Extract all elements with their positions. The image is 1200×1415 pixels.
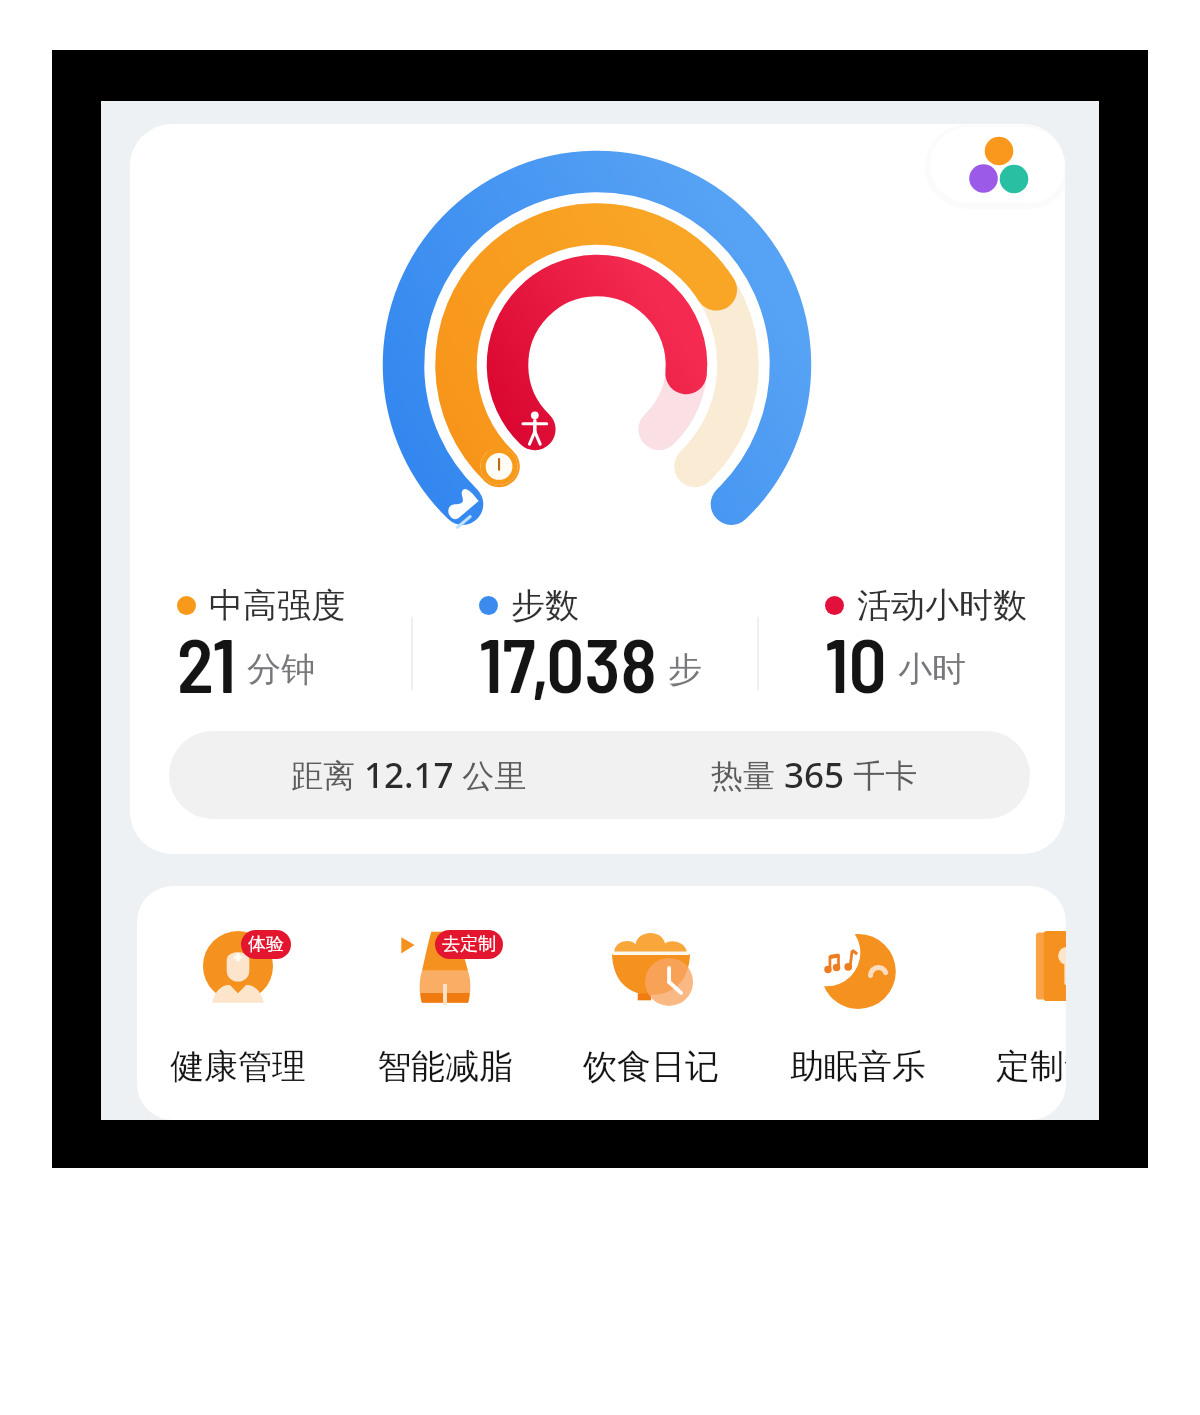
- staticText: 10: [825, 618, 887, 705]
- staticText: 智能减脂: [377, 1045, 513, 1088]
- button[interactable]: 定制食谱: [961, 886, 1066, 1120]
- staticText: 365: [784, 751, 845, 799]
- staticText: 助眠音乐: [790, 1045, 926, 1088]
- staticText: 距离: [291, 753, 364, 797]
- button[interactable]: 去定制: [342, 886, 548, 1120]
- button[interactable]: 距离: [169, 731, 1030, 819]
- staticText: 公里: [454, 753, 527, 797]
- staticText: 定制食谱: [996, 1045, 1066, 1088]
- staticText: 中高强度: [209, 584, 345, 627]
- staticText: 小时: [898, 648, 966, 691]
- staticText: 17,038: [479, 618, 657, 705]
- staticText: 分钟: [247, 648, 315, 691]
- button[interactable]: 体验: [137, 886, 341, 1120]
- button[interactable]: 步数: [479, 584, 757, 714]
- staticText: 活动小时数: [857, 584, 1027, 627]
- button[interactable]: 饮食日记: [548, 886, 754, 1120]
- button[interactable]: Apps: [130, 124, 1065, 854]
- staticText: 热量: [711, 753, 784, 797]
- staticText: 去定制: [442, 933, 496, 956]
- staticText: 饮食日记: [583, 1045, 719, 1088]
- button[interactable]: 中高强度: [177, 584, 411, 714]
- button[interactable]: Apps: [930, 127, 1065, 203]
- button[interactable]: 活动小时数: [825, 584, 1065, 714]
- staticText: 步数: [511, 584, 579, 627]
- staticText: 体验: [248, 933, 284, 956]
- staticText: 21: [177, 618, 236, 705]
- staticText: 健康管理: [170, 1045, 306, 1088]
- button[interactable]: 助眠音乐: [755, 886, 961, 1120]
- staticText: 12.17: [364, 751, 454, 799]
- staticText: 千卡: [845, 753, 918, 797]
- staticText: 步: [668, 648, 702, 691]
